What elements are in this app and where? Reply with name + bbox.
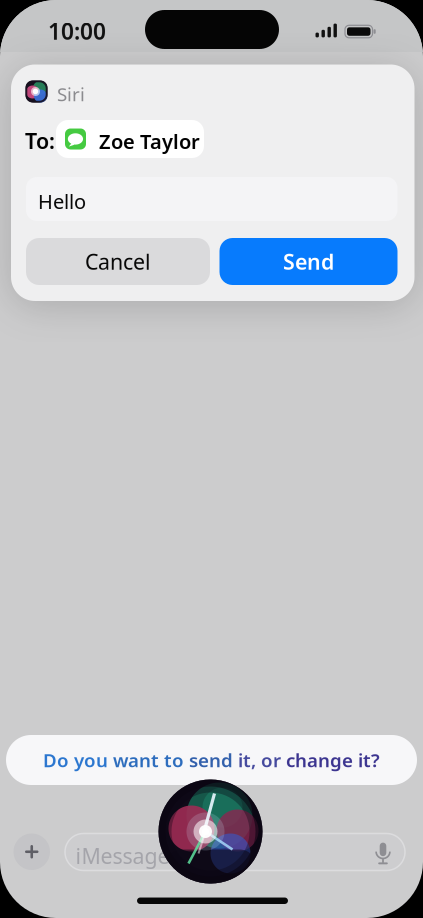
button[interactable]: Dictate [372,839,394,865]
staticText: iMessage [75,841,169,870]
staticText: To: [25,126,55,155]
staticText: want to [113,748,189,772]
button[interactable]: Siri [158,779,262,883]
button[interactable]: Cancel [26,238,210,285]
staticText: Hello [38,188,86,215]
staticText: Cancel [85,247,151,276]
staticText: Send [283,247,334,276]
button[interactable]: Send [219,238,397,285]
button[interactable]: Zoe Taylor [56,120,204,158]
button[interactable]: iMessage [65,833,405,870]
staticText: Zoe Taylor [99,128,200,155]
staticText: Do you [43,748,113,772]
button[interactable]: Hello [26,177,397,221]
staticText: Siri [57,81,85,106]
button[interactable]: Add attachment [13,833,50,870]
staticText: it, or [238,748,286,772]
staticText: send [189,748,238,772]
staticText: change it? [286,748,380,772]
staticText: 10:00 [48,16,106,46]
